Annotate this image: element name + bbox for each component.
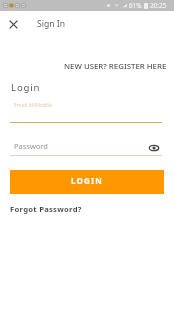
button[interactable]: Close bbox=[5, 16, 22, 33]
staticText: 61% bbox=[129, 1, 142, 10]
staticText: Password bbox=[14, 141, 48, 151]
staticText: Sign In bbox=[37, 18, 65, 30]
button[interactable]: Show password bbox=[147, 141, 160, 154]
staticText: LOGIN bbox=[71, 175, 104, 186]
staticText: Email Id/Mobile bbox=[14, 101, 52, 108]
button[interactable]: Password bbox=[10, 138, 162, 156]
button[interactable]: Email Id/Mobile bbox=[10, 98, 162, 123]
button[interactable]: NEW USER? REGISTER HERE bbox=[63, 59, 168, 74]
button[interactable]: LOGIN bbox=[10, 170, 164, 194]
staticText: Login bbox=[11, 81, 41, 94]
button[interactable]: Forgot Password? bbox=[10, 204, 82, 214]
staticText: 20:25 bbox=[150, 1, 167, 10]
